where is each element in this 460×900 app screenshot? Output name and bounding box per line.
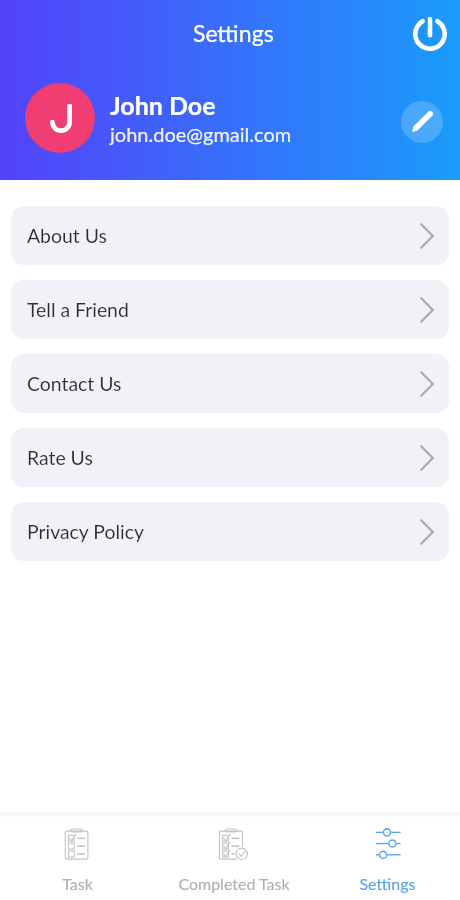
button[interactable]: Log out <box>407 11 453 57</box>
button[interactable]: Tell a Friend <box>11 280 449 339</box>
button[interactable]: Settings <box>307 817 460 900</box>
staticText: Tell a Friend <box>27 298 129 321</box>
button[interactable]: About Us <box>11 206 449 265</box>
button[interactable]: Contact Us <box>11 354 449 413</box>
staticText: Completed Task <box>178 874 290 893</box>
staticText: About Us <box>27 224 107 247</box>
button[interactable]: Privacy Policy <box>11 502 449 561</box>
staticText: John Doe <box>110 90 216 120</box>
button[interactable]: Rate Us <box>11 428 449 487</box>
staticText: Settings <box>193 19 274 47</box>
button[interactable]: Profile picture <box>25 83 95 153</box>
staticText: john.doe@gmail.com <box>110 122 292 146</box>
button[interactable]: Completed Task <box>154 817 307 900</box>
button[interactable]: Task <box>0 817 154 900</box>
staticText: Privacy Policy <box>27 520 144 543</box>
button[interactable]: Edit profile <box>401 101 443 143</box>
staticText: Task <box>62 874 93 893</box>
staticText: Settings <box>359 874 416 893</box>
staticText: Rate Us <box>27 446 93 469</box>
staticText: Contact Us <box>27 372 122 395</box>
